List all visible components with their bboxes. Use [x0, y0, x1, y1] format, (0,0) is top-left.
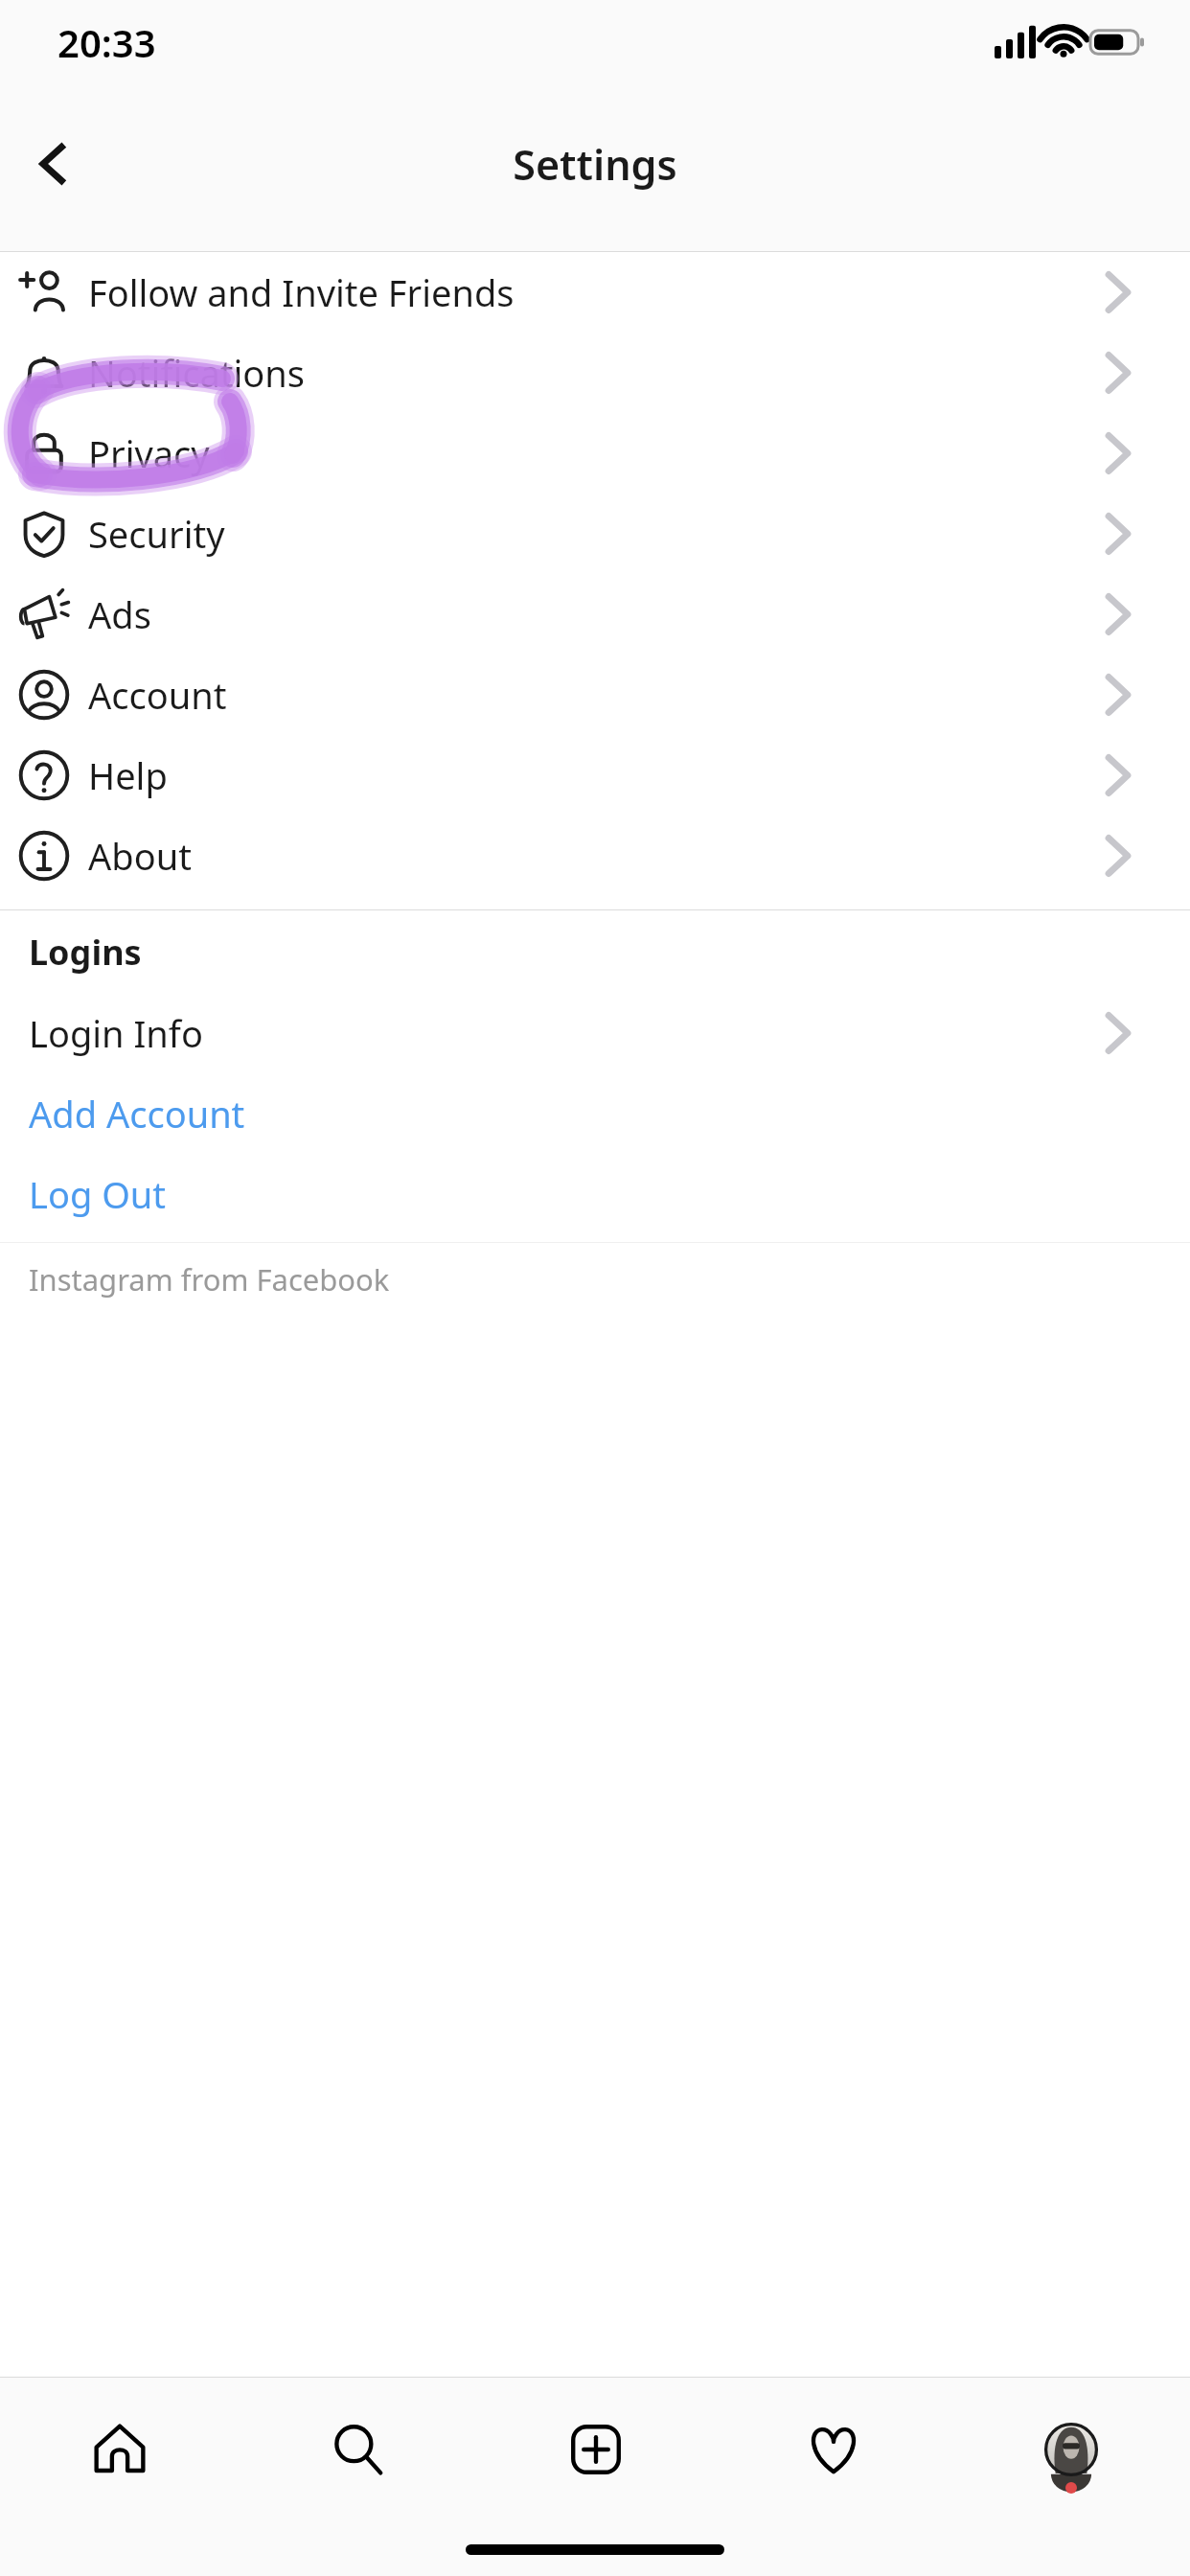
staticText: 20:33 — [57, 16, 156, 68]
staticText: Login Info — [29, 1008, 203, 1058]
button[interactable]: About — [0, 816, 1190, 896]
staticText: Add Account — [29, 1089, 245, 1138]
button[interactable]: Activity — [715, 2378, 952, 2521]
button[interactable]: Notifications — [0, 333, 1190, 413]
staticText: Logins — [29, 929, 142, 976]
staticText: Log Out — [29, 1169, 167, 1219]
staticText: Security — [88, 509, 225, 559]
staticText: Help — [88, 750, 168, 800]
staticText: Follow and Invite Friends — [88, 267, 515, 317]
staticText: Settings — [513, 136, 677, 193]
button[interactable]: Profile — [952, 2378, 1190, 2521]
staticText: Notifications — [88, 348, 306, 398]
staticText: Ads — [88, 589, 151, 639]
button[interactable]: Add Account — [0, 1073, 1190, 1154]
button[interactable]: Account — [0, 655, 1190, 735]
button[interactable]: Follow and Invite Friends — [0, 252, 1190, 333]
button[interactable]: Create — [477, 2378, 715, 2521]
button[interactable]: Ads — [0, 574, 1190, 655]
staticText: About — [88, 831, 192, 881]
button[interactable]: Home — [0, 2378, 239, 2521]
button[interactable]: Search — [239, 2378, 477, 2521]
button[interactable]: Privacy — [0, 413, 1190, 494]
button[interactable]: Back — [8, 118, 100, 210]
button[interactable]: Log Out — [0, 1154, 1190, 1234]
button[interactable]: Security — [0, 494, 1190, 574]
staticText: Instagram from Facebook — [29, 1259, 390, 1299]
button[interactable]: Login Info — [0, 993, 1190, 1073]
button[interactable]: Help — [0, 735, 1190, 816]
staticText: Account — [88, 670, 227, 720]
staticText: Privacy — [88, 428, 210, 478]
